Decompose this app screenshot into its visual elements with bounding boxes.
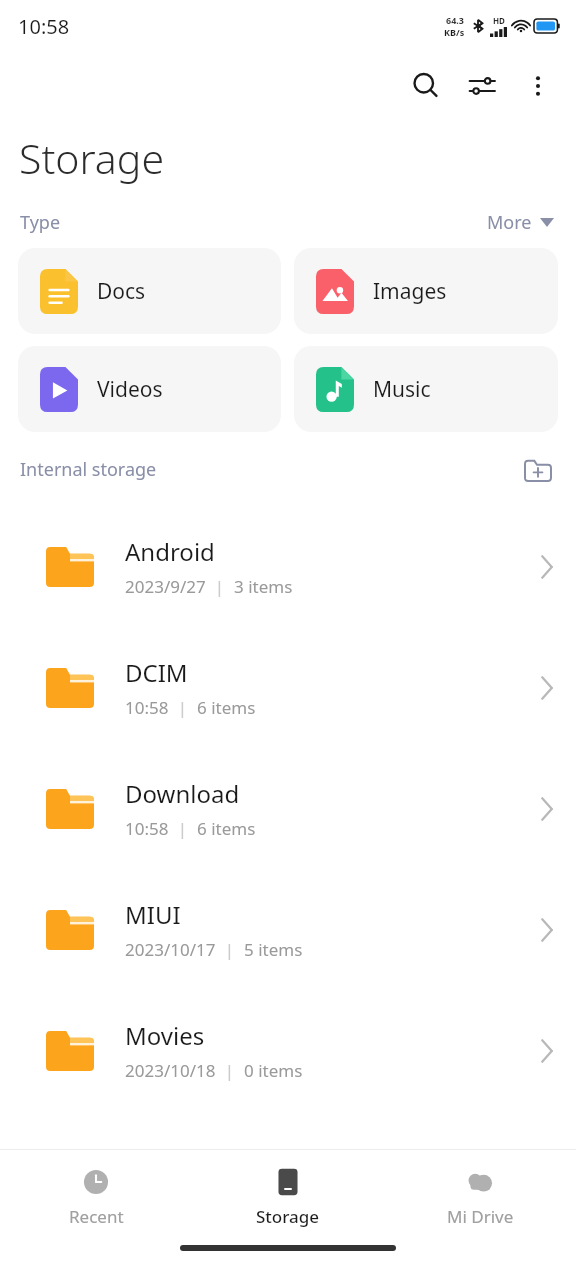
staticText: 0 items <box>244 1059 303 1082</box>
staticText: 10:58 <box>18 13 70 40</box>
staticText: DCIM <box>125 656 188 689</box>
staticText: Images <box>373 277 447 306</box>
staticText: 6 items <box>197 696 256 719</box>
button[interactable]: Search <box>398 58 454 114</box>
button[interactable]: Music <box>294 346 558 432</box>
staticText: 5 items <box>244 938 303 961</box>
staticText: Storage <box>256 1205 320 1228</box>
staticText: Recent <box>69 1205 124 1228</box>
staticText: 10:58 <box>125 696 169 719</box>
staticText: Music <box>373 375 431 404</box>
staticText: 64.3 <box>446 14 464 26</box>
staticText: 2023/10/17 <box>125 938 216 961</box>
staticText: Android <box>125 535 215 568</box>
staticText: Movies <box>125 1019 205 1052</box>
button[interactable]: Movies <box>0 990 576 1111</box>
staticText: Videos <box>97 375 163 404</box>
staticText: 3 items <box>234 575 293 598</box>
button[interactable]: DCIM <box>0 627 576 748</box>
staticText: | <box>216 938 244 961</box>
staticText: | <box>169 696 197 719</box>
staticText: 2023/10/18 <box>125 1059 216 1082</box>
button[interactable]: New folder <box>518 449 558 489</box>
button[interactable]: Mi Drive <box>384 1161 576 1234</box>
staticText: Internal storage <box>20 457 157 482</box>
staticText: | <box>169 817 197 840</box>
staticText: HD <box>493 15 505 26</box>
button[interactable]: More options <box>510 58 566 114</box>
staticText: MIUI <box>125 898 181 931</box>
button[interactable]: More <box>483 206 558 239</box>
staticText: Storage <box>19 130 165 186</box>
staticText: 6 items <box>197 817 256 840</box>
button[interactable]: Android <box>0 506 576 627</box>
staticText: | <box>216 1059 244 1082</box>
button[interactable]: Storage <box>192 1161 384 1234</box>
staticText: KB/s <box>444 26 465 38</box>
button[interactable]: Docs <box>18 248 281 334</box>
staticText: | <box>206 575 234 598</box>
button[interactable]: Recent <box>0 1161 192 1234</box>
staticText: Docs <box>97 277 146 306</box>
staticText: 2023/9/27 <box>125 575 206 598</box>
staticText: More <box>487 210 532 235</box>
staticText: Download <box>125 777 240 810</box>
button[interactable]: Images <box>294 248 558 334</box>
staticText: Type <box>20 210 61 235</box>
button[interactable]: Sort <box>454 58 510 114</box>
button[interactable]: MIUI <box>0 869 576 990</box>
button[interactable]: Videos <box>18 346 281 432</box>
staticText: 10:58 <box>125 817 169 840</box>
button[interactable]: Download <box>0 748 576 869</box>
staticText: Mi Drive <box>447 1205 514 1228</box>
